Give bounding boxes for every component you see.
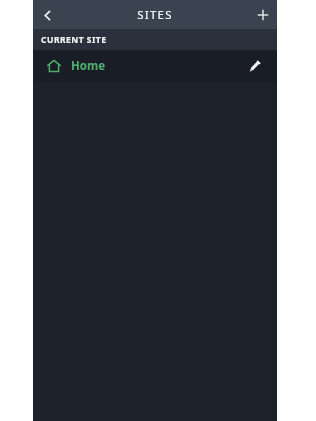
staticText: CURRENT SITE [41,34,107,46]
button[interactable]: Edit site [243,55,265,77]
button[interactable]: Add site [249,1,277,29]
staticText: Home [71,58,106,74]
button[interactable]: Home [33,50,277,82]
staticText: SITES [137,7,173,23]
button[interactable]: Back [33,1,61,29]
